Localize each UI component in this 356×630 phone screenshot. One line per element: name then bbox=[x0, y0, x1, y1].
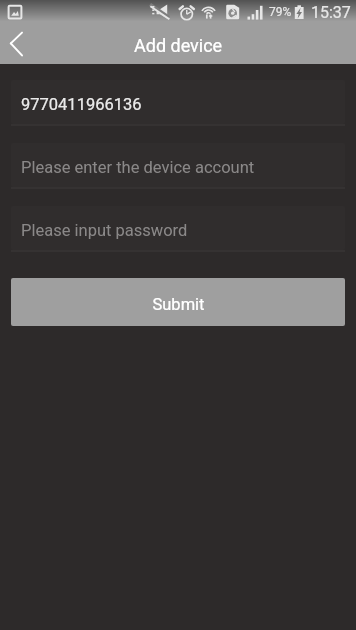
staticText: Please enter the device account bbox=[21, 158, 255, 177]
button[interactable]: Please input password bbox=[11, 206, 345, 252]
button[interactable]: Back bbox=[0, 22, 42, 64]
staticText: Please input password bbox=[21, 221, 188, 240]
button[interactable]: Please enter the device account bbox=[11, 143, 345, 189]
button[interactable]: Submit bbox=[11, 278, 345, 326]
staticText: 79% bbox=[269, 5, 292, 19]
staticText: Add device bbox=[134, 35, 223, 56]
staticText: 15:37 bbox=[311, 3, 351, 22]
staticText: 9770411966136 bbox=[21, 95, 142, 114]
button[interactable]: 9770411966136 bbox=[11, 80, 345, 126]
staticText: Submit bbox=[152, 295, 205, 314]
